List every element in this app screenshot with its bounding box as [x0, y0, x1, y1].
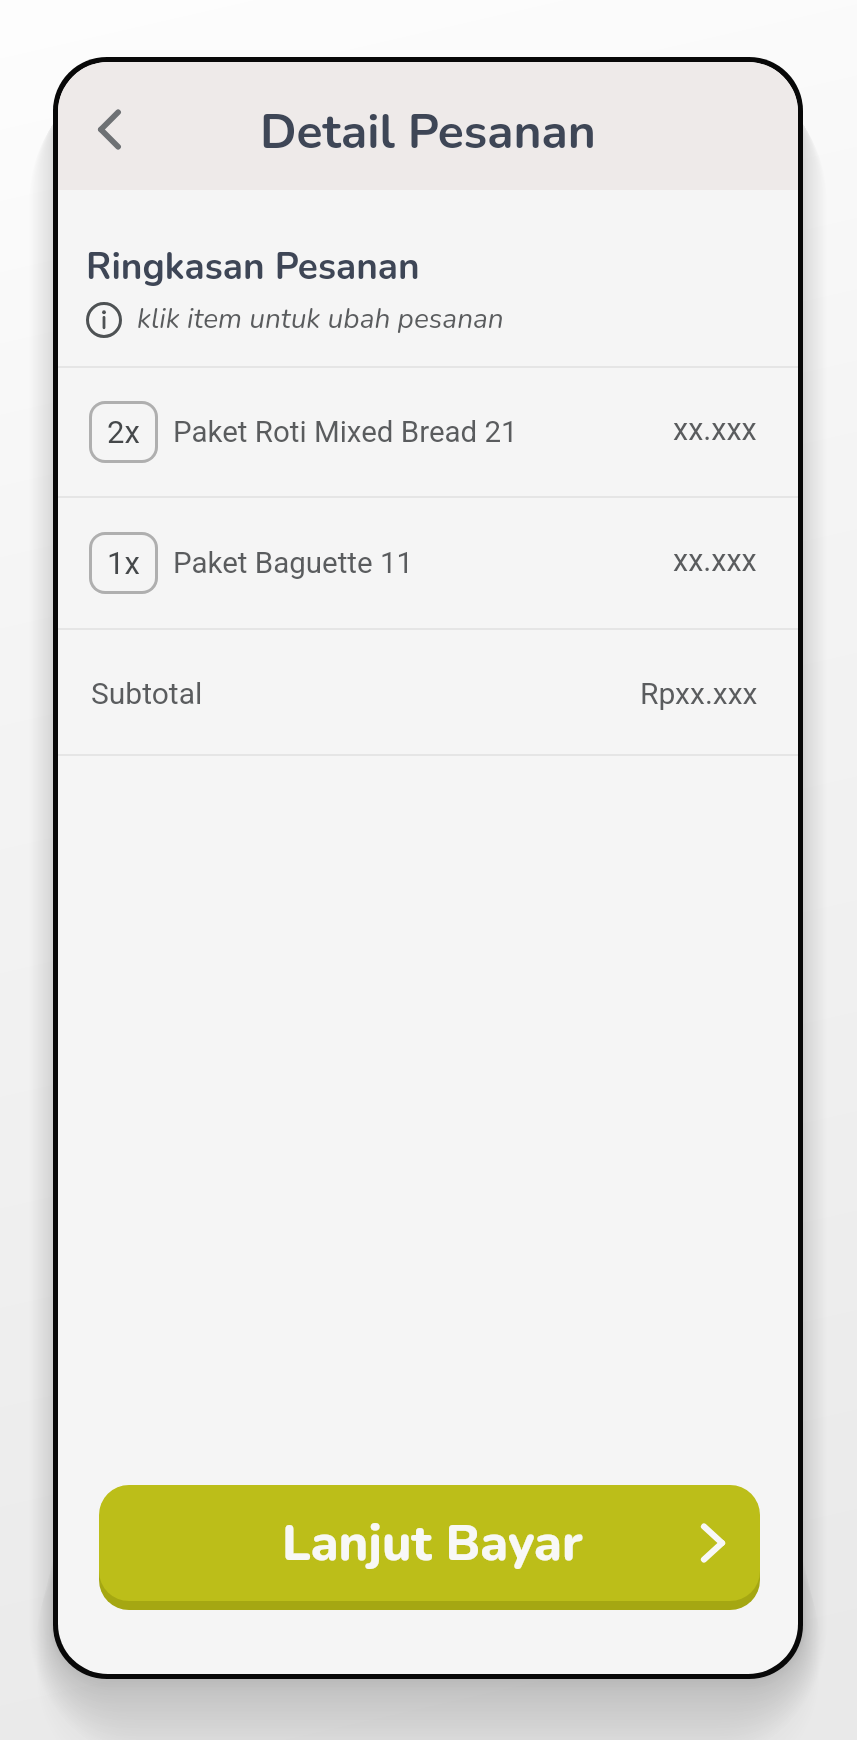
staticText: Subtotal: [91, 676, 203, 711]
staticText: xx.xxx: [673, 412, 757, 448]
button[interactable]: 2x: [58, 368, 798, 496]
staticText: 1x: [107, 545, 140, 581]
staticText: 2x: [107, 414, 140, 450]
staticText: Ringkasan Pesanan: [86, 242, 420, 292]
staticText: xx.xxx: [673, 543, 757, 579]
staticText: Lanjut Bayar: [282, 1509, 583, 1577]
button[interactable]: Lanjut Bayar: [99, 1485, 760, 1610]
staticText: Paket Roti Mixed Bread 21: [173, 415, 518, 450]
staticText: Rpxx.xxx: [640, 676, 758, 711]
button[interactable]: 1x: [58, 498, 798, 628]
staticText: Detail Pesanan: [260, 99, 596, 164]
staticText: klik item untuk ubah pesanan: [137, 300, 504, 338]
button[interactable]: Back: [72, 91, 142, 161]
staticText: Paket Baguette 11: [173, 546, 414, 581]
